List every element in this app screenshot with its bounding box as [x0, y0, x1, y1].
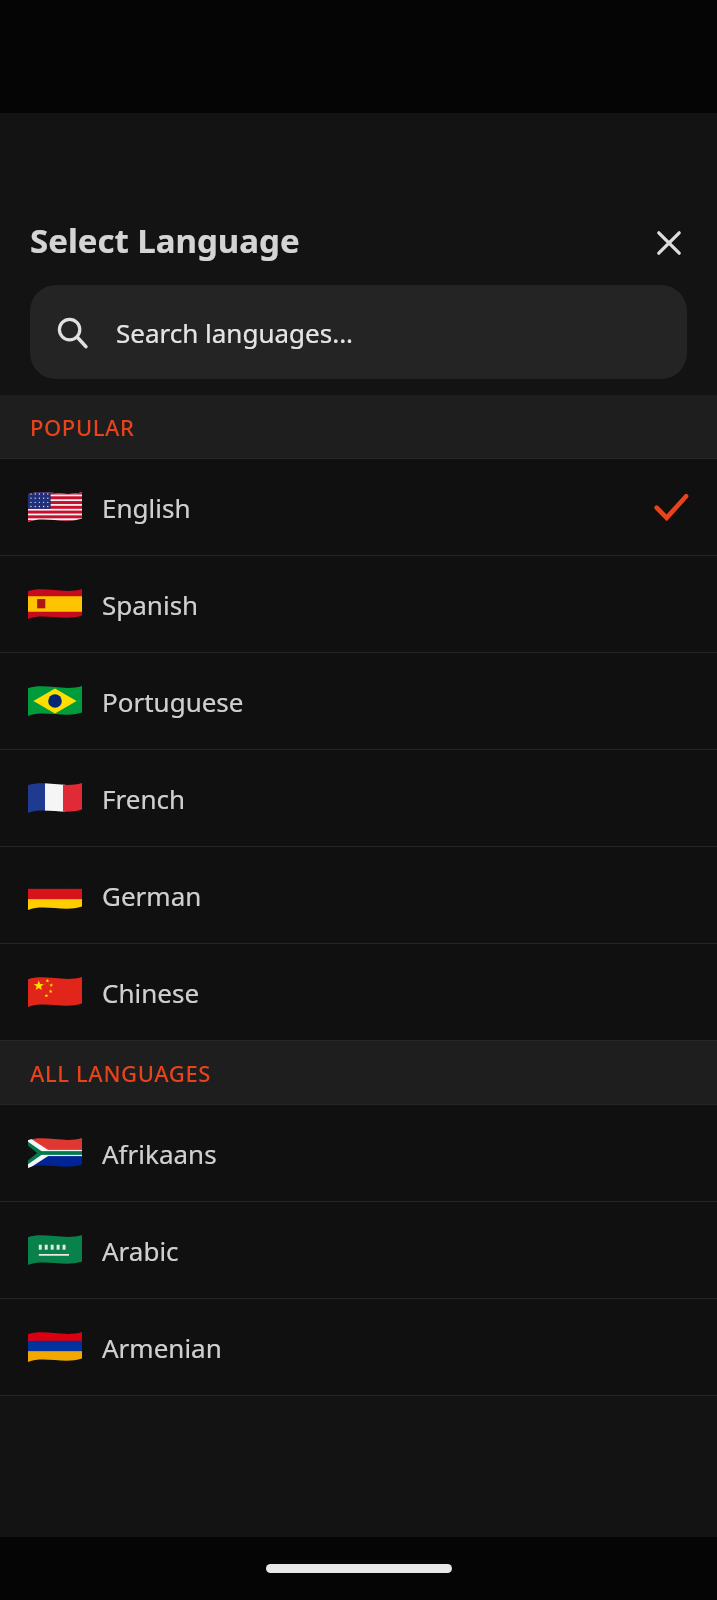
button[interactable]: French	[0, 750, 717, 846]
staticText: Search languages...	[116, 315, 354, 350]
staticText: POPULAR	[30, 412, 135, 442]
button[interactable]: Arabic	[0, 1202, 717, 1298]
button[interactable]: Spanish	[0, 556, 717, 652]
button[interactable]: Afrikaans	[0, 1105, 717, 1201]
staticText: Chinese	[102, 975, 200, 1010]
staticText: Arabic	[102, 1233, 179, 1268]
staticText: German	[102, 878, 202, 913]
staticText: Afrikaans	[102, 1136, 217, 1171]
button[interactable]: Armenian	[0, 1299, 717, 1395]
staticText: Spanish	[102, 587, 199, 622]
button[interactable]: Chinese	[0, 944, 717, 1040]
button[interactable]: German	[0, 847, 717, 943]
button[interactable]: Search languages...	[30, 285, 687, 379]
staticText: ALL LANGUAGES	[30, 1058, 211, 1088]
button[interactable]: Close	[641, 215, 697, 271]
staticText: Select Language	[30, 218, 300, 263]
staticText: English	[102, 490, 191, 525]
staticText: Portuguese	[102, 684, 244, 719]
button[interactable]: English	[0, 459, 717, 555]
staticText: French	[102, 781, 185, 816]
button[interactable]: Portuguese	[0, 653, 717, 749]
staticText: Armenian	[102, 1330, 222, 1365]
